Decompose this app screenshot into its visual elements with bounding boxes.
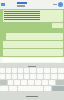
button[interactable] [49, 80, 55, 85]
button[interactable] [21, 80, 27, 85]
button[interactable] [37, 68, 43, 73]
button[interactable] [18, 74, 23, 79]
button[interactable] [24, 68, 29, 73]
button[interactable] [52, 23, 63, 28]
button[interactable] [14, 80, 20, 85]
button[interactable] [8, 80, 13, 85]
button[interactable] [18, 68, 23, 73]
button[interactable] [58, 68, 64, 73]
button[interactable] [24, 74, 29, 79]
button[interactable] [6, 74, 11, 79]
button[interactable] [51, 74, 57, 79]
button[interactable] [44, 68, 50, 73]
button[interactable] [12, 74, 17, 79]
button[interactable] [44, 74, 50, 79]
button[interactable] [30, 74, 36, 79]
button[interactable]: Profile [58, 2, 63, 7]
button[interactable] [3, 10, 63, 22]
button[interactable] [58, 74, 64, 79]
button[interactable] [28, 80, 34, 85]
button[interactable] [12, 68, 17, 73]
button[interactable] [42, 80, 48, 85]
button[interactable] [30, 68, 36, 73]
button[interactable] [51, 68, 57, 73]
button[interactable] [37, 74, 43, 79]
button[interactable] [35, 80, 41, 85]
button[interactable] [0, 74, 5, 79]
button[interactable] [6, 68, 11, 73]
button[interactable] [0, 68, 5, 73]
